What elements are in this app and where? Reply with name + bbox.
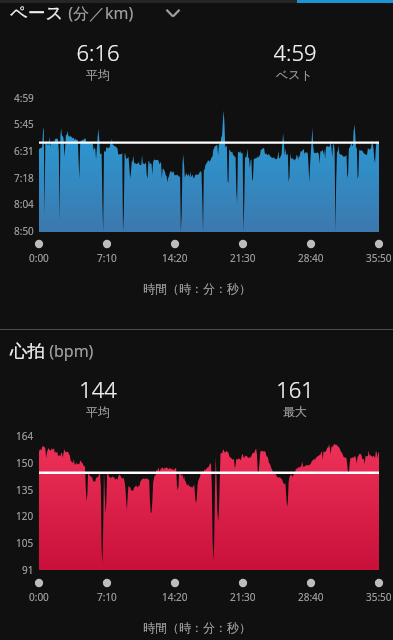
staticText: 最大: [283, 404, 307, 419]
staticText: 4:59: [273, 37, 317, 67]
staticText: 5:45: [14, 117, 34, 131]
staticText: 平均: [86, 404, 110, 419]
staticText: 8:50: [14, 224, 34, 238]
staticText: 0:00: [29, 590, 49, 604]
staticText: 8:04: [14, 197, 34, 211]
staticText: 28:40: [298, 590, 324, 604]
staticText: 平均: [86, 67, 110, 82]
staticText: ペース: [10, 2, 64, 24]
staticText: 28:40: [298, 251, 324, 265]
staticText: 35:50: [366, 590, 392, 604]
staticText: 144: [79, 374, 117, 404]
staticText: 7:18: [14, 171, 34, 185]
staticText: 120: [16, 509, 34, 523]
staticText: 6:16: [76, 37, 120, 67]
staticText: 6:31: [14, 144, 34, 158]
staticText: 105: [16, 536, 34, 550]
staticText: 91: [22, 563, 34, 577]
button[interactable]: ペース: [0, 1, 393, 25]
staticText: 7:10: [97, 251, 117, 265]
staticText: 35:50: [366, 251, 392, 265]
staticText: 時間（時：分：秒）: [143, 620, 251, 635]
staticText: (分／km): [64, 2, 134, 24]
staticText: ベスト: [276, 67, 313, 82]
staticText: (bpm): [45, 340, 94, 362]
staticText: 心拍: [10, 340, 45, 362]
other: Change metric: [162, 2, 184, 24]
staticText: 161: [276, 374, 314, 404]
staticText: 7:10: [97, 590, 117, 604]
staticText: 0:00: [29, 251, 49, 265]
staticText: 14:20: [162, 590, 188, 604]
staticText: 14:20: [162, 251, 188, 265]
staticText: 21:30: [230, 590, 256, 604]
staticText: 21:30: [230, 251, 256, 265]
button[interactable]: 心拍: [0, 339, 393, 363]
staticText: 4:59: [14, 91, 34, 105]
staticText: 150: [16, 456, 34, 470]
staticText: 時間（時：分：秒）: [143, 281, 251, 296]
staticText: 135: [16, 483, 34, 497]
staticText: 164: [16, 429, 34, 443]
